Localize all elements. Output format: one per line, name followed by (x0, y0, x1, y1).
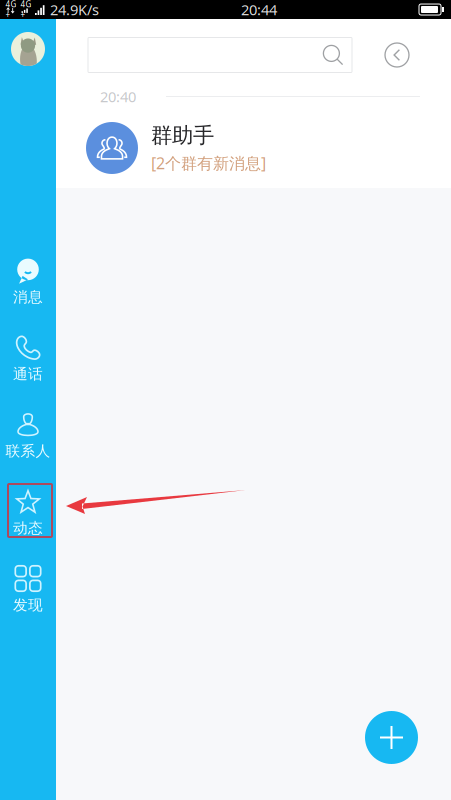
staticText: 4G+ (20, 0, 31, 20)
staticText: 群助手 (151, 122, 214, 148)
staticText: 通话 (13, 365, 43, 383)
button[interactable]: New message (365, 711, 418, 764)
button[interactable]: 联系人 (0, 397, 56, 474)
button[interactable]: 发现 (0, 551, 56, 628)
button[interactable]: 动态 (0, 474, 56, 551)
button[interactable]: Back (379, 28, 415, 75)
staticText: 4G+ (5, 0, 16, 20)
staticText: 联系人 (5, 442, 50, 460)
staticText: 20:40 (100, 87, 136, 106)
staticText: 24.9K/s (50, 0, 99, 19)
staticText: 20:44 (241, 0, 277, 19)
button[interactable]: 群助手 (56, 108, 451, 188)
button[interactable]: 通话 (0, 320, 56, 397)
staticText: [2个群有新消息] (151, 152, 266, 174)
button[interactable]: Search (88, 28, 352, 75)
button[interactable]: Profile (11, 32, 45, 66)
staticText: 动态 (13, 519, 43, 537)
staticText: 消息 (13, 288, 43, 306)
button[interactable]: 消息 (0, 243, 56, 320)
staticText: 发现 (13, 596, 43, 614)
